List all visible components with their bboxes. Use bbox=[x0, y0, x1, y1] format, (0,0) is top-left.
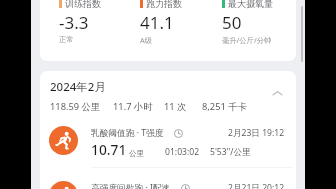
staticText: 11 次 bbox=[164, 100, 187, 113]
staticText: 118.59 公里 bbox=[50, 100, 101, 113]
staticText: 10.71 bbox=[91, 140, 127, 159]
staticText: 训练指数 bbox=[65, 0, 101, 9]
button[interactable]: 2024年2月 bbox=[40, 71, 296, 113]
button[interactable]: 高强度间歇跑 · I配速 bbox=[40, 168, 296, 189]
staticText: 正常 bbox=[59, 35, 74, 44]
staticText: 2月23日 19:12 bbox=[228, 127, 285, 139]
staticText: 乳酸阈值跑 · T强度 bbox=[91, 127, 164, 139]
staticText: 50 bbox=[222, 11, 242, 34]
staticText: A级 bbox=[140, 35, 152, 45]
staticText: 5'53"/公里 bbox=[210, 146, 251, 158]
staticText: 跑力指数 bbox=[146, 0, 182, 9]
staticText: 2024年2月 bbox=[50, 79, 106, 95]
staticText: 最大摄氧量 bbox=[228, 0, 273, 9]
button[interactable]: 乳酸阈值跑 · T强度 bbox=[40, 113, 296, 167]
other: Collapse bbox=[272, 88, 283, 99]
staticText: 11.7 小时 bbox=[113, 100, 153, 113]
staticText: 2月21日 20:12 bbox=[228, 182, 285, 189]
staticText: 高强度间歇跑 · I配速 bbox=[91, 182, 171, 189]
staticText: 8,251 千卡 bbox=[202, 100, 247, 113]
staticText: -3.3 bbox=[59, 11, 89, 34]
staticText: 41.1 bbox=[140, 11, 174, 34]
staticText: 公里 bbox=[129, 149, 144, 158]
staticText: 01:03:02 bbox=[165, 146, 200, 158]
staticText: 毫升/公斤/分钟 bbox=[222, 35, 272, 45]
